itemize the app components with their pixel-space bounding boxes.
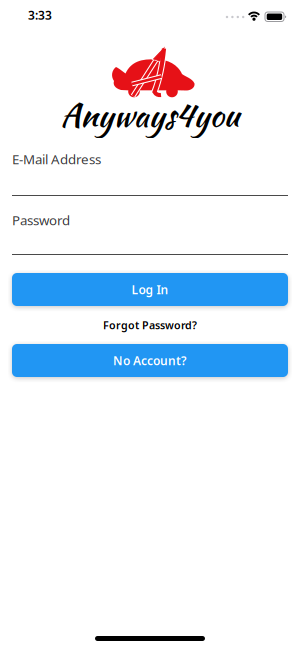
button[interactable]: Forgot Password? [103,316,197,334]
staticText: 3:33 [28,7,52,23]
button[interactable]: No Account? [12,344,288,377]
staticText: Log In [131,281,168,297]
staticText: Password [12,211,70,229]
button[interactable]: Log In [12,273,288,306]
staticText: Anyways4you [60,92,239,138]
staticText: E-Mail Address [12,150,101,168]
staticText: No Account? [113,352,187,368]
staticText: Forgot Password? [103,318,197,332]
